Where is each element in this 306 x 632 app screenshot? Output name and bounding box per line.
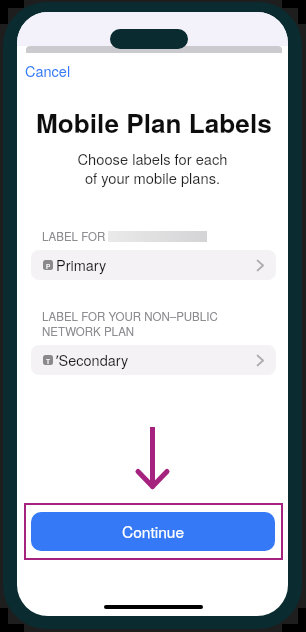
- staticText: LABEL FOR YOUR NON–PUBLIC NETWORK PLAN: [42, 308, 218, 339]
- staticText: Continue: [122, 520, 185, 542]
- other: Open: [256, 354, 265, 367]
- button[interactable]: Cancel: [25, 60, 71, 81]
- staticText: LABEL FOR: [42, 228, 106, 244]
- staticText: Primary: [56, 254, 107, 275]
- button[interactable]: P: [31, 250, 276, 280]
- button[interactable]: T: [31, 345, 276, 375]
- other: Open: [256, 259, 265, 272]
- staticText: Cancel: [25, 60, 71, 81]
- button[interactable]: Continue: [31, 512, 275, 551]
- staticText: Mobile Plan Labels: [36, 104, 272, 142]
- staticText: Choose labels for each of your mobile pl…: [17, 148, 288, 188]
- staticText: ʼSecondary: [56, 349, 129, 370]
- staticText: T: [46, 356, 51, 365]
- staticText: P: [46, 261, 51, 270]
